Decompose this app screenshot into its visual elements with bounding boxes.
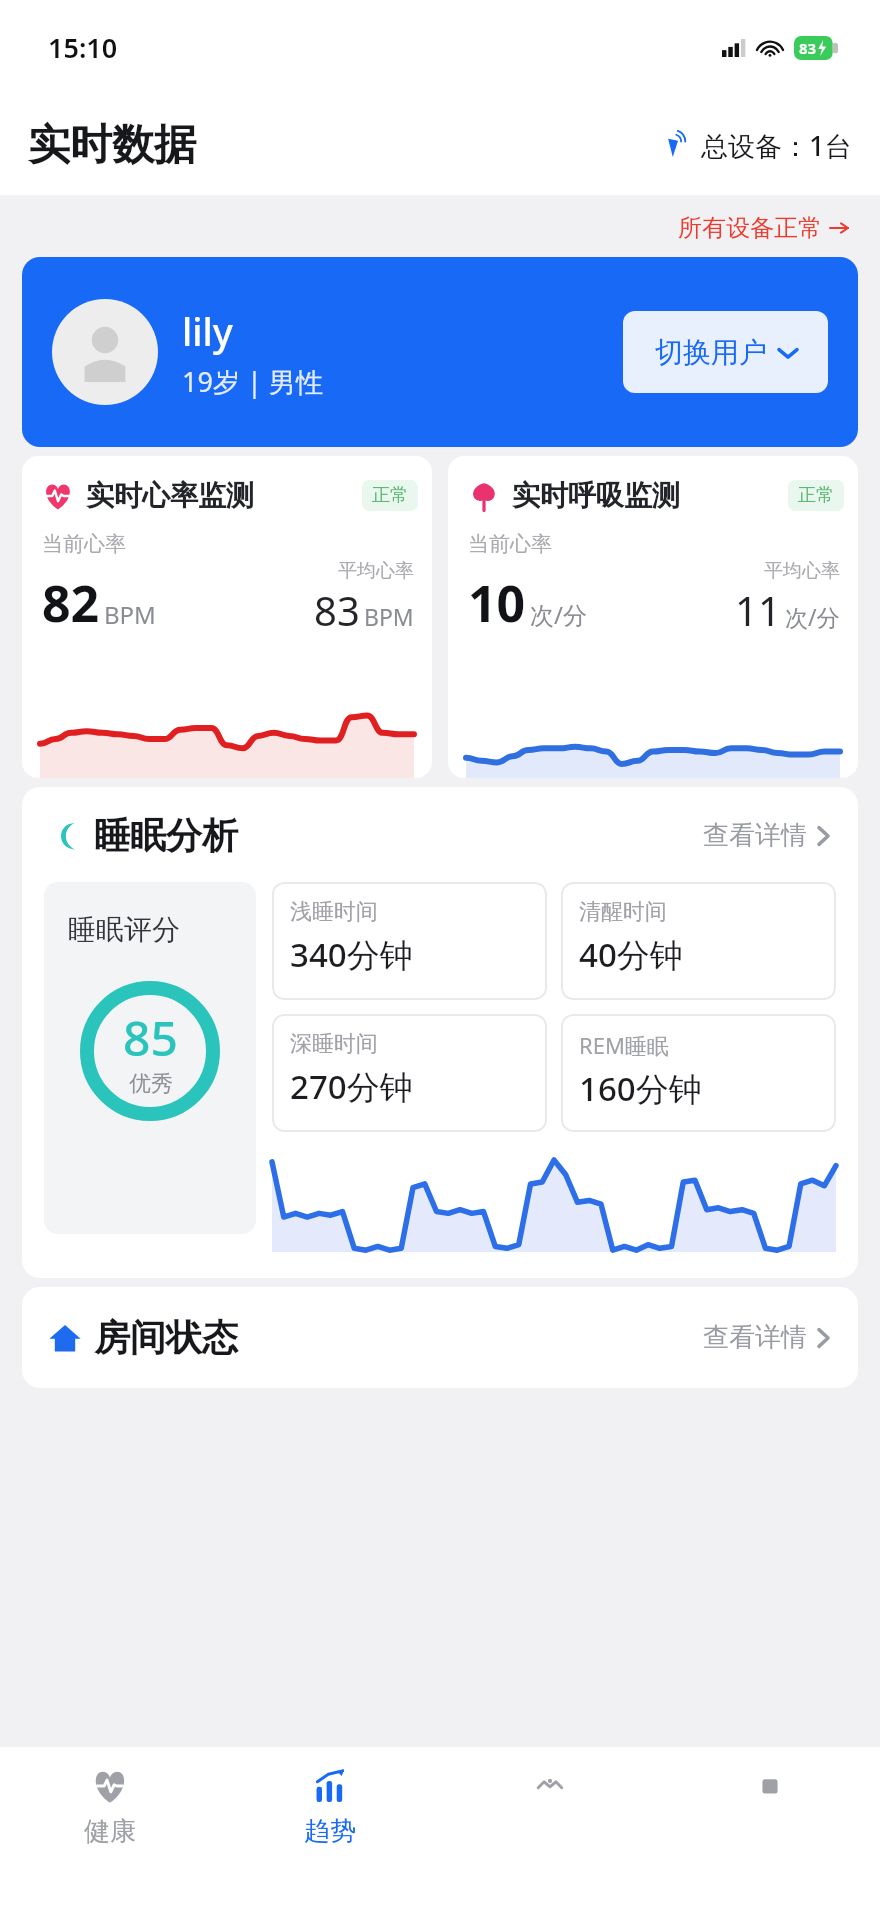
button[interactable]: 切换用户: [623, 311, 828, 393]
staticText: 实时呼吸监测: [512, 478, 788, 513]
staticText: 270分钟: [290, 1064, 413, 1109]
staticText: 优秀: [129, 1070, 173, 1098]
button[interactable]: REM睡眠: [561, 1014, 836, 1132]
button[interactable]: Tab: [440, 1747, 660, 1907]
staticText: BPM: [104, 598, 156, 631]
button[interactable]: lily: [22, 257, 858, 447]
staticText: 切换用户: [655, 335, 767, 370]
button[interactable]: 清醒时间: [561, 882, 836, 1000]
staticText: 10: [468, 569, 526, 637]
staticText: 15:10: [48, 29, 118, 66]
button[interactable]: 健康: [0, 1747, 220, 1907]
staticText: 总设备：1台: [701, 127, 852, 164]
staticText: 睡眠分析: [94, 813, 699, 858]
staticText: 83: [799, 38, 817, 58]
staticText: 房间状态: [94, 1315, 699, 1360]
staticText: 平均心率: [764, 559, 840, 583]
button[interactable]: 深睡时间: [272, 1014, 547, 1132]
staticText: 85: [123, 1005, 178, 1070]
staticText: 11: [735, 583, 781, 637]
button[interactable]: 查看详情: [699, 815, 834, 856]
staticText: 83: [314, 583, 360, 637]
button[interactable]: 实时心率监测: [22, 456, 432, 778]
button[interactable]: 实时呼吸监测: [448, 456, 858, 778]
staticText: 160分钟: [579, 1066, 702, 1111]
staticText: 当前心率: [42, 531, 126, 557]
button[interactable]: Tab: [660, 1747, 880, 1907]
staticText: 查看详情: [703, 819, 807, 852]
staticText: 40分钟: [579, 932, 683, 977]
staticText: 当前心率: [468, 531, 552, 557]
staticText: REM睡眠: [579, 1030, 669, 1060]
other: Devices: [665, 133, 691, 159]
staticText: 平均心率: [338, 559, 414, 583]
staticText: 正常: [372, 484, 408, 507]
staticText: 340分钟: [290, 932, 413, 977]
staticText: 深睡时间: [290, 1030, 378, 1058]
staticText: 所有设备正常: [678, 213, 822, 243]
staticText: 趋势: [304, 1815, 356, 1848]
button[interactable]: 睡眠评分: [44, 882, 256, 1234]
button[interactable]: 查看详情: [699, 1317, 834, 1358]
staticText: 健康: [84, 1815, 136, 1848]
staticText: lily: [182, 305, 233, 357]
button[interactable]: 趋势: [220, 1747, 440, 1907]
button[interactable]: Devices: [665, 127, 852, 164]
button[interactable]: 浅睡时间: [272, 882, 547, 1000]
staticText: 82: [42, 569, 100, 637]
staticText: BPM: [364, 601, 414, 632]
button[interactable]: 所有设备正常: [674, 209, 854, 247]
staticText: 次/分: [785, 601, 840, 632]
staticText: 19岁 | 男性: [182, 363, 323, 400]
staticText: 正常: [798, 484, 834, 507]
staticText: 查看详情: [703, 1321, 807, 1354]
staticText: 清醒时间: [579, 898, 667, 926]
staticText: 次/分: [530, 598, 587, 631]
staticText: 睡眠评分: [68, 912, 180, 947]
staticText: 实时心率监测: [86, 478, 362, 513]
staticText: 浅睡时间: [290, 898, 378, 926]
staticText: 实时数据: [28, 119, 196, 172]
